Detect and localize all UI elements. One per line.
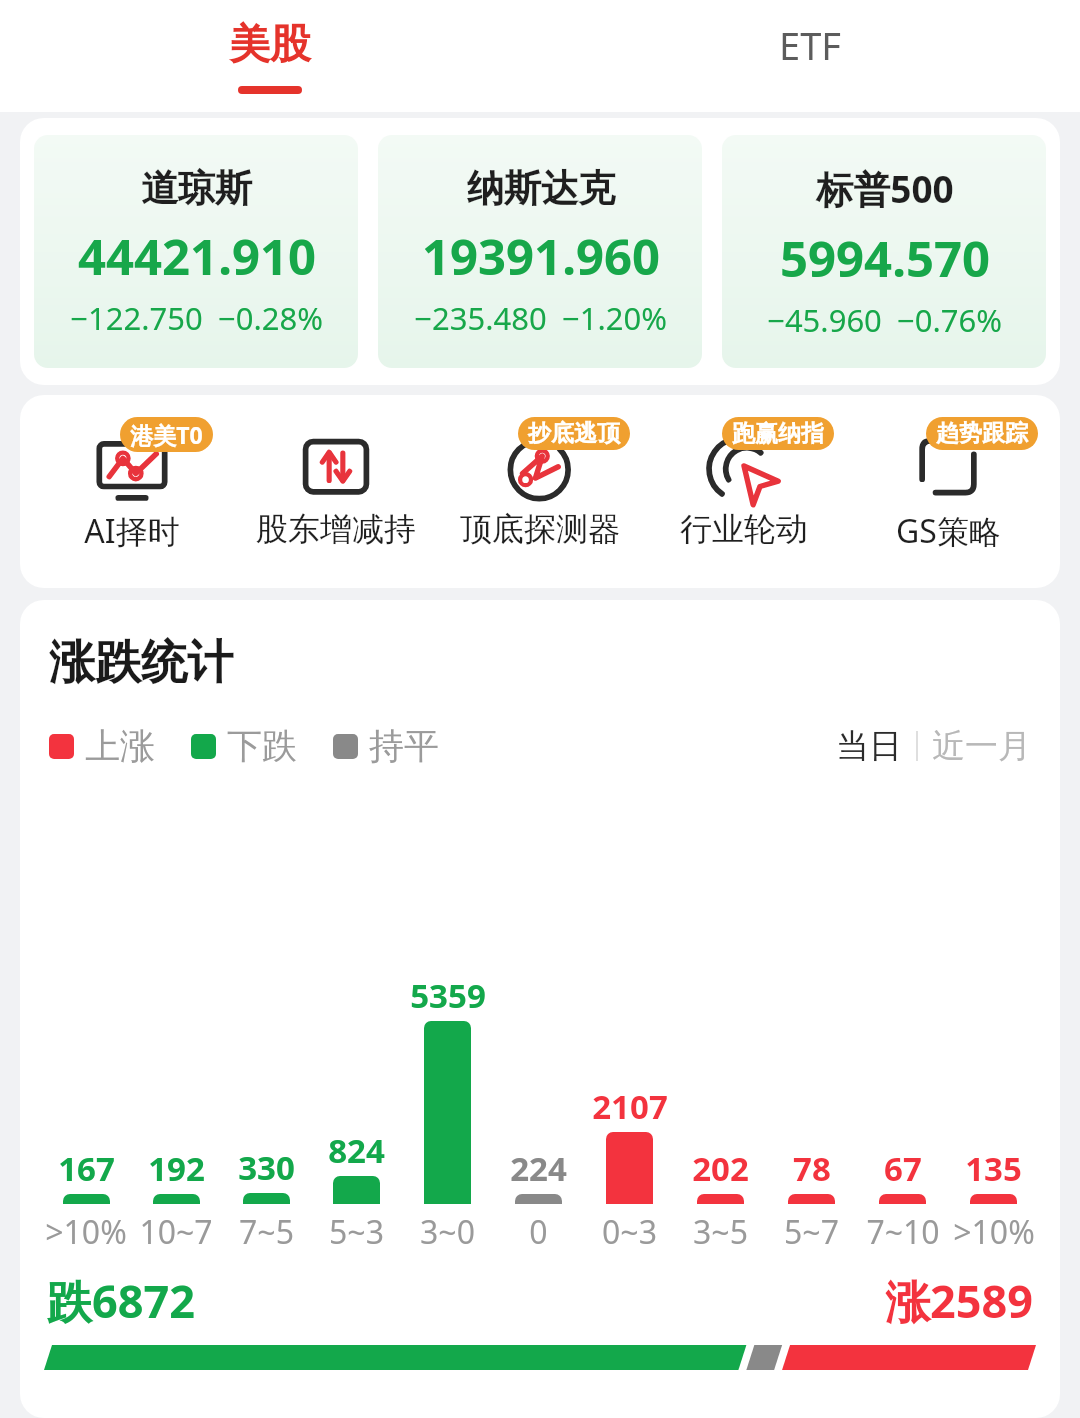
staticText: 67 (884, 1146, 922, 1191)
staticText: 3~0 (420, 1210, 475, 1254)
button[interactable]: 标普500 (722, 135, 1046, 368)
staticText: 行业轮动 (680, 509, 808, 549)
staticText: 135 (965, 1146, 1022, 1191)
staticText: −1.20% (562, 297, 667, 339)
staticText: 2107 (592, 1084, 668, 1129)
button[interactable]: 下跌 (191, 724, 297, 768)
button[interactable]: 道琼斯 (34, 135, 358, 368)
staticText: 0~3 (602, 1210, 657, 1254)
staticText: −0.76% (897, 299, 1002, 341)
staticText: −45.960 (767, 299, 882, 341)
button[interactable]: GS策略 (850, 417, 1046, 553)
button[interactable]: 股东增减持 (238, 417, 434, 549)
button[interactable]: ETF (540, 0, 1080, 112)
staticText: 港美T0 (130, 419, 203, 450)
staticText: 当日 (836, 725, 902, 767)
staticText: 道琼斯 (141, 165, 252, 212)
staticText: >10% (45, 1210, 127, 1254)
staticText: 持平 (369, 724, 439, 768)
staticText: 0 (529, 1210, 548, 1254)
staticText: 5~3 (329, 1210, 384, 1254)
staticText: 涨2589 (885, 1270, 1033, 1331)
staticText: 7~5 (239, 1210, 294, 1254)
staticText: 824 (328, 1128, 385, 1173)
staticText: 5~7 (784, 1210, 839, 1254)
staticText: 股东增减持 (256, 509, 416, 549)
button[interactable]: 行业轮动 (646, 417, 842, 549)
staticText: −0.28% (218, 297, 323, 339)
staticText: 抄底逃顶 (528, 419, 620, 448)
staticText: 202 (692, 1146, 749, 1191)
button[interactable]: 美股 (0, 0, 540, 112)
staticText: 167 (58, 1146, 115, 1191)
staticText: 5359 (410, 973, 486, 1018)
staticText: 5994.570 (780, 225, 990, 292)
staticText: GS策略 (896, 509, 1001, 553)
button[interactable]: 近一月 (932, 725, 1031, 767)
staticText: 跌6872 (47, 1270, 195, 1331)
staticText: 标普500 (816, 163, 954, 214)
staticText: 192 (148, 1146, 205, 1191)
staticText: 224 (510, 1146, 567, 1191)
staticText: 330 (238, 1145, 295, 1190)
staticText: 78 (793, 1146, 831, 1191)
staticText: 7~10 (866, 1210, 940, 1254)
staticText: 顶底探测器 (460, 509, 620, 549)
button[interactable]: AI择时 (34, 417, 230, 553)
button[interactable]: 上涨 (49, 724, 155, 768)
staticText: 趋势跟踪 (936, 419, 1028, 448)
staticText: 下跌 (227, 724, 297, 768)
button[interactable]: 持平 (333, 724, 439, 768)
button[interactable]: 顶底探测器 (442, 417, 638, 549)
button[interactable]: 纳斯达克 (378, 135, 702, 368)
staticText: 上涨 (85, 724, 155, 768)
staticText: 3~5 (693, 1210, 748, 1254)
staticText: −122.750 (70, 297, 203, 339)
staticText: 跑赢纳指 (732, 419, 824, 448)
staticText: AI择时 (84, 509, 180, 553)
staticText: 44421.910 (78, 223, 316, 290)
staticText: −235.480 (414, 297, 547, 339)
staticText: 19391.960 (422, 223, 660, 290)
staticText: 涨跌统计 (49, 634, 233, 692)
staticText: 10~7 (139, 1210, 213, 1254)
staticText: 美股 (229, 19, 311, 71)
button[interactable]: 当日 (836, 725, 902, 767)
staticText: 近一月 (932, 725, 1031, 767)
staticText: 纳斯达克 (467, 165, 615, 212)
staticText: ETF (779, 19, 841, 71)
staticText: >10% (953, 1210, 1035, 1254)
